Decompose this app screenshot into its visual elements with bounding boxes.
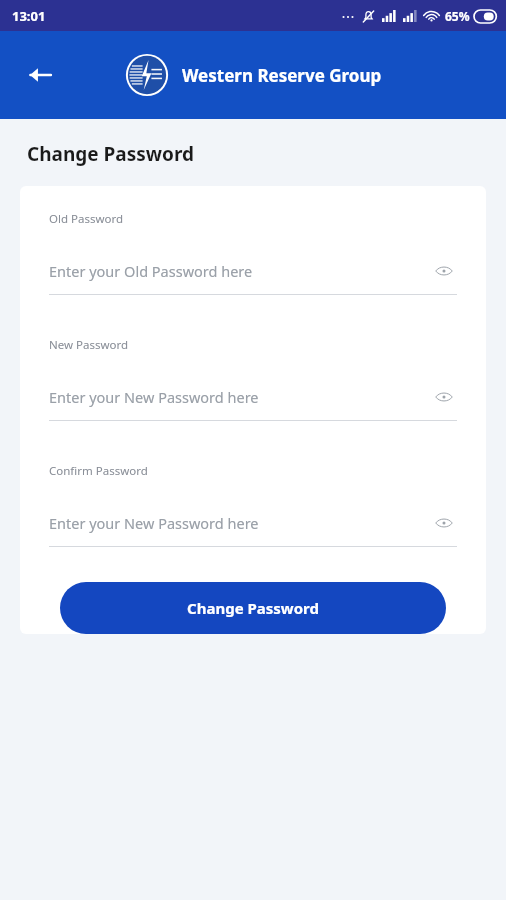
button[interactable]: Back (17, 52, 63, 98)
staticText: 65% (445, 8, 470, 24)
button[interactable]: Enter your New Password here (49, 510, 457, 536)
staticText: Enter your New Password here (49, 513, 431, 533)
button[interactable]: Show password (431, 258, 457, 284)
button[interactable]: Enter your Old Password here (49, 258, 457, 284)
staticText: 13:01 (12, 7, 46, 25)
staticText: Confirm Password (49, 463, 148, 479)
staticText: Change Password (187, 598, 319, 618)
staticText: Enter your Old Password here (49, 261, 431, 281)
button[interactable]: Show password (431, 510, 457, 536)
staticText: Western Reserve Group (182, 64, 382, 87)
staticText: Old Password (49, 211, 124, 227)
staticText: Change Password (27, 141, 195, 167)
button[interactable]: Show password (431, 384, 457, 410)
staticText: New Password (49, 337, 129, 353)
button[interactable]: Change Password (60, 582, 446, 634)
button[interactable]: Enter your New Password here (49, 384, 457, 410)
staticText: Enter your New Password here (49, 387, 431, 407)
